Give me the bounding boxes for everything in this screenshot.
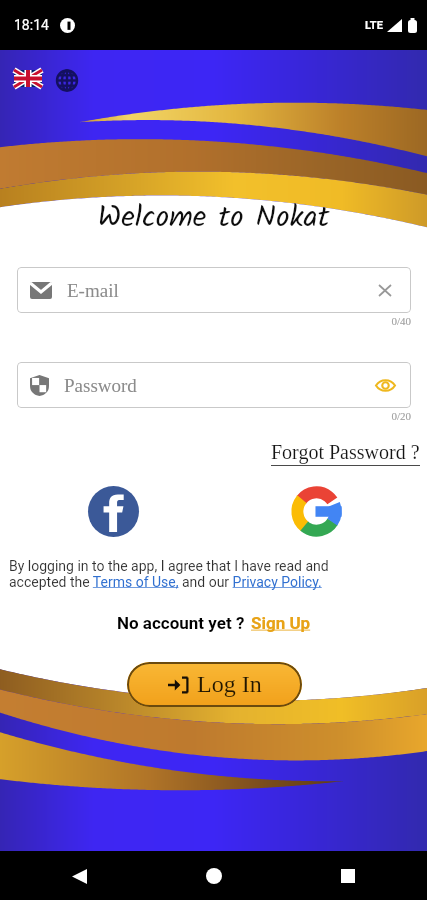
staticText: accepted the Terms of Use, and our Priva…: [9, 574, 322, 590]
button[interactable]: Sign in with Google: [290, 485, 342, 537]
staticText: 0/20: [17, 410, 411, 422]
button[interactable]: Recents: [331, 859, 365, 893]
staticText: Forgot Password ?: [271, 441, 420, 463]
staticText: Password: [64, 375, 137, 396]
staticText: Welcome to Nokat: [0, 194, 427, 242]
button[interactable]: Clear: [374, 279, 396, 301]
button[interactable]: By logging in to the app, I agree that I…: [9, 558, 418, 590]
button[interactable]: Password: [17, 362, 411, 408]
button[interactable]: Change language: [52, 66, 82, 94]
button[interactable]: Back: [62, 859, 96, 893]
button[interactable]: Sign Up: [251, 613, 311, 633]
button[interactable]: Show password: [374, 374, 396, 396]
staticText: Log In: [197, 671, 262, 698]
button[interactable]: Sign in with Facebook: [87, 485, 139, 537]
button[interactable]: Log In: [127, 662, 302, 707]
button[interactable]: Forgot Password ?: [271, 441, 420, 466]
button[interactable]: E-mail: [17, 267, 411, 313]
staticText: By logging in to the app, I agree that I…: [9, 558, 418, 574]
staticText: No account yet ?: [117, 613, 245, 633]
staticText: LTE: [365, 19, 383, 32]
staticText: 0/40: [17, 315, 411, 327]
staticText: E-mail: [67, 280, 119, 301]
button[interactable]: Home: [197, 859, 231, 893]
button[interactable]: English language: [13, 66, 43, 90]
staticText: 18:14: [14, 17, 49, 33]
staticText: Sign Up: [251, 613, 311, 633]
